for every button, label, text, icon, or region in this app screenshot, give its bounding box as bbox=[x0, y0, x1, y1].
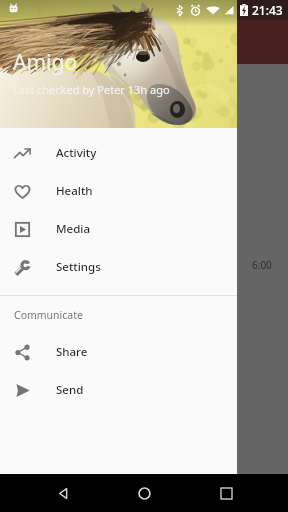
button[interactable]: Share bbox=[0, 333, 237, 371]
button[interactable]: Settings bbox=[0, 248, 237, 286]
button[interactable]: Home bbox=[125, 474, 163, 512]
staticText: 6:00 bbox=[252, 258, 272, 272]
button[interactable]: Back bbox=[44, 474, 82, 512]
staticText: Last checked by Peter 13h ago bbox=[13, 82, 170, 97]
staticText: Settings bbox=[56, 259, 101, 275]
staticText: Communicate bbox=[14, 308, 83, 322]
button[interactable]: Activity bbox=[0, 134, 237, 172]
staticText: Amigo bbox=[13, 48, 78, 77]
button[interactable]: Recent apps bbox=[207, 474, 245, 512]
button[interactable]: Health bbox=[0, 172, 237, 210]
button[interactable]: Send bbox=[0, 371, 237, 409]
staticText: 21:43 bbox=[252, 2, 283, 18]
button[interactable]: Media bbox=[0, 210, 237, 248]
staticText: Share bbox=[56, 344, 88, 360]
staticText: Activity bbox=[56, 145, 97, 161]
staticText: Send bbox=[56, 382, 84, 398]
staticText: Health bbox=[56, 183, 93, 199]
staticText: Media bbox=[56, 221, 90, 237]
